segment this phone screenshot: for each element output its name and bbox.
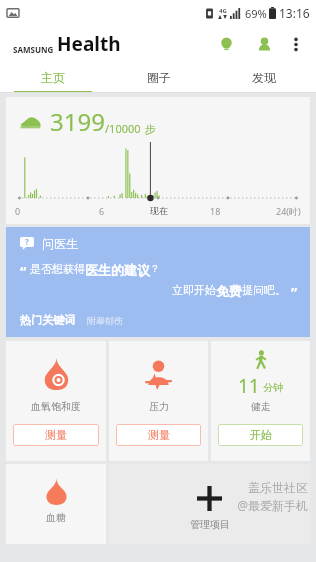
staticText: 0 — [15, 205, 21, 217]
staticText: 现在 — [150, 205, 168, 216]
staticText: 发现 — [252, 70, 276, 85]
button[interactable]: 热门关键词 — [20, 313, 75, 327]
button[interactable]: 发现 — [211, 62, 316, 93]
button[interactable]: 测量 — [13, 424, 99, 446]
button[interactable]: Tips — [210, 28, 242, 60]
staticText: 盖乐世社区 — [248, 480, 308, 495]
staticText: 提问吧。 — [242, 283, 286, 297]
staticText: 是否想获得 — [30, 262, 85, 276]
staticText: 6 — [99, 205, 105, 217]
staticText: 血氧饱和度 — [31, 400, 81, 413]
staticText: 开始 — [250, 428, 272, 442]
staticText: Health — [57, 31, 121, 57]
staticText: 血糖 — [46, 511, 66, 524]
staticText: 69% — [245, 6, 267, 21]
staticText: 4G — [219, 7, 227, 15]
staticText: 3199 — [50, 105, 105, 138]
button[interactable]: ? — [6, 227, 310, 337]
staticText: 圈子 — [147, 70, 171, 85]
staticText: 24(时) — [276, 205, 301, 217]
staticText: @最爱新手机 — [237, 497, 308, 513]
staticText: 免费 — [216, 283, 242, 299]
button[interactable]: 管理项目 — [109, 464, 310, 544]
staticText: 分钟 — [263, 381, 283, 394]
button[interactable]: Profile — [248, 28, 280, 60]
staticText: 压力 — [149, 400, 169, 413]
button[interactable]: 11 — [211, 341, 310, 461]
button[interactable]: More options — [281, 29, 311, 59]
staticText: “ — [20, 262, 27, 281]
button[interactable]: 压力 — [109, 341, 208, 461]
staticText: 问医生 — [42, 236, 78, 251]
button[interactable]: 血糖 — [6, 464, 106, 544]
button[interactable]: 开始 — [218, 424, 303, 446]
staticText: 步 — [145, 122, 156, 136]
staticText: 医生的建议 — [85, 262, 150, 278]
button[interactable]: 3199 — [6, 97, 310, 224]
staticText: 立即开始 — [172, 283, 216, 297]
staticText: SAMSUNG — [13, 44, 54, 55]
staticText: 18 — [210, 205, 221, 217]
button[interactable]: 圈子 — [106, 62, 211, 93]
button[interactable]: 主页 — [0, 62, 106, 93]
staticText: 测量 — [148, 428, 170, 442]
staticText: 11 — [238, 373, 260, 396]
button[interactable]: 血氧饱和度 — [6, 341, 106, 461]
button[interactable]: 附睾郁伤 — [87, 315, 123, 326]
staticText: 测量 — [45, 428, 67, 442]
staticText: 13:16 — [279, 5, 310, 21]
staticText: ? — [25, 236, 29, 247]
staticText: ？ — [150, 262, 160, 275]
staticText: /10000 — [105, 121, 141, 136]
button[interactable]: 测量 — [116, 424, 201, 446]
staticText: 健走 — [251, 400, 271, 413]
staticText: ” — [291, 283, 298, 302]
staticText: 主页 — [41, 70, 65, 85]
staticText: 管理项目 — [190, 518, 230, 531]
